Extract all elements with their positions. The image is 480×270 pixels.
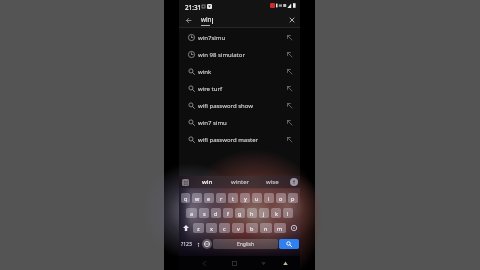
- staticText: c: [223, 225, 226, 232]
- staticText: wifi password master: [198, 136, 259, 144]
- button[interactable]: j: [259, 208, 269, 218]
- staticText: x: [210, 225, 213, 232]
- staticText: v: [237, 225, 240, 232]
- staticText: p: [291, 195, 295, 202]
- button[interactable]: q: [181, 193, 190, 203]
- button[interactable]: k: [271, 208, 281, 218]
- button[interactable]: Back: [182, 14, 194, 26]
- button[interactable]: win 98 simulator: [179, 46, 300, 63]
- staticText: r: [220, 195, 223, 202]
- button[interactable]: i: [264, 193, 274, 203]
- staticText: win7simu: [198, 34, 226, 42]
- button[interactable]: d: [211, 208, 221, 218]
- staticText: d: [214, 210, 218, 217]
- button[interactable]: wink: [179, 63, 300, 80]
- button[interactable]: wifi password show: [179, 97, 300, 114]
- staticText: wise: [266, 178, 279, 186]
- staticText: wifi password show: [198, 102, 254, 110]
- staticText: m: [277, 225, 283, 232]
- button[interactable]: Emoji keyboard: [179, 176, 191, 188]
- staticText: q: [184, 195, 188, 202]
- button[interactable]: English: [213, 239, 278, 249]
- button[interactable]: y: [240, 193, 250, 203]
- staticText: j: [263, 210, 265, 217]
- staticText: l: [287, 210, 289, 217]
- staticText: win: [201, 15, 212, 24]
- staticText: n: [264, 225, 268, 232]
- button[interactable]: s: [199, 208, 209, 218]
- button[interactable]: w: [192, 193, 202, 203]
- button[interactable]: x: [206, 223, 217, 233]
- staticText: win 98 simulator: [198, 51, 245, 59]
- button[interactable]: z: [193, 223, 204, 233]
- button[interactable]: e: [204, 193, 214, 203]
- staticText: z: [197, 225, 200, 232]
- staticText: 21:31: [185, 3, 202, 12]
- button[interactable]: g: [235, 208, 245, 218]
- button[interactable]: Back: [198, 257, 210, 269]
- button[interactable]: Hide keyboard: [279, 257, 291, 269]
- staticText: a: [190, 210, 194, 217]
- button[interactable]: m: [274, 223, 286, 233]
- staticText: y: [244, 195, 247, 202]
- button[interactable]: win7 simu: [179, 114, 300, 131]
- button[interactable]: Voice input: [288, 176, 300, 188]
- staticText: i: [268, 195, 270, 202]
- button[interactable]: Search: [279, 239, 299, 249]
- staticText: u: [255, 195, 259, 202]
- staticText: o: [279, 195, 283, 202]
- button[interactable]: wire turf: [179, 80, 300, 97]
- staticText: English: [237, 241, 255, 248]
- staticText: win: [202, 178, 213, 186]
- button[interactable]: Backspace: [287, 223, 300, 233]
- staticText: h: [250, 210, 254, 217]
- staticText: f: [227, 210, 229, 217]
- staticText: g: [238, 210, 242, 217]
- button[interactable]: u: [252, 193, 262, 203]
- staticText: winter: [231, 178, 250, 186]
- staticText: t: [232, 195, 234, 202]
- button[interactable]: v: [232, 223, 244, 233]
- button[interactable]: Change language: [202, 239, 212, 249]
- button[interactable]: ?123: [179, 239, 194, 249]
- button[interactable]: Clear search: [286, 14, 298, 26]
- staticText: b: [250, 225, 254, 232]
- staticText: k: [275, 210, 278, 217]
- button[interactable]: Comma: [194, 239, 202, 249]
- button[interactable]: a: [186, 208, 197, 218]
- button[interactable]: l: [283, 208, 293, 218]
- staticText: ?123: [181, 241, 192, 248]
- button[interactable]: f: [223, 208, 233, 218]
- button[interactable]: p: [288, 193, 298, 203]
- button[interactable]: h: [247, 208, 257, 218]
- button[interactable]: Recent apps: [257, 257, 269, 269]
- staticText: win7 simu: [198, 119, 227, 127]
- button[interactable]: o: [276, 193, 286, 203]
- button[interactable]: Shift: [179, 223, 192, 233]
- button[interactable]: Home: [228, 257, 240, 269]
- staticText: wink: [198, 68, 212, 76]
- button[interactable]: b: [246, 223, 258, 233]
- button[interactable]: n: [260, 223, 272, 233]
- staticText: wire turf: [198, 85, 222, 93]
- staticText: w: [195, 195, 200, 202]
- staticText: s: [203, 210, 206, 217]
- staticText: e: [207, 195, 211, 202]
- button[interactable]: win7simu: [179, 29, 300, 46]
- button[interactable]: c: [219, 223, 230, 233]
- button[interactable]: wifi password master: [179, 131, 300, 148]
- button[interactable]: t: [228, 193, 238, 203]
- button[interactable]: r: [216, 193, 226, 203]
